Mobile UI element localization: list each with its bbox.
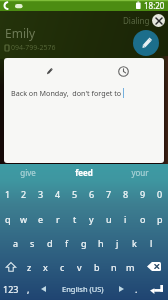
button[interactable]: 1: [0, 181, 16, 206]
staticText: e: [38, 213, 44, 225]
staticText: ,: [27, 283, 30, 295]
staticText: q: [5, 213, 11, 225]
button[interactable]: a: [7, 231, 24, 255]
staticText: 7: [106, 188, 112, 200]
staticText: 6: [89, 188, 95, 200]
button[interactable]: r: [49, 206, 66, 231]
staticText: Dialing: [123, 15, 150, 26]
staticText: k: [132, 237, 137, 249]
button[interactable]: .: [129, 278, 144, 300]
button[interactable]: 7: [100, 181, 117, 206]
button[interactable]: 3: [32, 181, 49, 206]
button[interactable]: q: [0, 206, 16, 231]
button[interactable]: p: [151, 206, 168, 231]
button[interactable]: 0: [151, 181, 168, 206]
staticText: 1: [5, 188, 11, 200]
staticText: 9: [140, 188, 146, 200]
staticText: your: [131, 167, 149, 178]
button[interactable]: m: [122, 255, 139, 278]
button[interactable]: y: [83, 206, 100, 231]
staticText: 3: [38, 188, 44, 200]
button[interactable]: 2: [16, 181, 32, 206]
button[interactable]: 9: [134, 181, 151, 206]
button[interactable]: Next: [114, 278, 129, 300]
staticText: 094-799-2576: [11, 43, 56, 53]
staticText: Emily: [5, 25, 36, 41]
button[interactable]: 123: [0, 278, 21, 300]
button[interactable]: n: [105, 255, 122, 278]
staticText: y: [89, 213, 94, 225]
staticText: x: [43, 261, 48, 273]
staticText: v: [77, 261, 82, 273]
button[interactable]: Enter: [144, 278, 168, 300]
button[interactable]: o: [134, 206, 151, 231]
staticText: g: [81, 237, 87, 249]
button[interactable]: Shift: [0, 255, 21, 278]
staticText: give: [20, 167, 36, 178]
button[interactable]: s: [24, 231, 41, 255]
button[interactable]: t: [66, 206, 83, 231]
button[interactable]: j: [109, 231, 126, 255]
staticText: t: [73, 213, 77, 225]
staticText: .: [135, 283, 138, 295]
staticText: o: [140, 213, 146, 225]
button[interactable]: c: [54, 255, 71, 278]
staticText: m: [126, 261, 135, 273]
staticText: n: [111, 261, 117, 273]
button[interactable]: give: [0, 164, 56, 181]
button[interactable]: z: [21, 255, 37, 278]
button[interactable]: English (US): [51, 278, 114, 300]
button[interactable]: ,: [21, 278, 36, 300]
button[interactable]: l: [143, 231, 160, 255]
staticText: u: [106, 213, 112, 225]
button[interactable]: 6: [83, 181, 100, 206]
button[interactable]: h: [92, 231, 109, 255]
staticText: h: [98, 237, 104, 249]
staticText: j: [116, 237, 119, 249]
button[interactable]: k: [126, 231, 143, 255]
staticText: d: [47, 237, 53, 249]
button[interactable]: 4: [49, 181, 66, 206]
button[interactable]: b: [88, 255, 105, 278]
staticText: l: [150, 237, 153, 249]
button[interactable]: g: [75, 231, 92, 255]
staticText: 5: [72, 188, 78, 200]
staticText: c: [60, 261, 65, 273]
button[interactable]: u: [100, 206, 117, 231]
button[interactable]: Edit message: [133, 30, 159, 56]
staticText: Back on Monday, don't forget to: [11, 88, 122, 98]
button[interactable]: e: [32, 206, 49, 231]
staticText: a: [13, 237, 19, 249]
button[interactable]: v: [71, 255, 88, 278]
staticText: 123: [3, 283, 19, 295]
button[interactable]: 5: [66, 181, 83, 206]
button[interactable]: 8: [117, 181, 134, 206]
staticText: 18:20: [144, 0, 165, 11]
staticText: feed: [75, 167, 93, 178]
button[interactable]: w: [16, 206, 32, 231]
staticText: p: [157, 213, 163, 225]
staticText: s: [30, 237, 35, 249]
button[interactable]: f: [58, 231, 75, 255]
staticText: 4: [55, 188, 61, 200]
button[interactable]: Schedule: [112, 60, 134, 82]
button[interactable]: d: [41, 231, 58, 255]
staticText: 2: [21, 188, 27, 200]
staticText: f: [65, 237, 69, 249]
staticText: i: [124, 213, 127, 225]
button[interactable]: Backspace: [139, 255, 168, 278]
button[interactable]: x: [37, 255, 54, 278]
button[interactable]: i: [117, 206, 134, 231]
button[interactable]: Previous: [36, 278, 51, 300]
staticText: 0: [157, 188, 163, 200]
staticText: b: [94, 261, 100, 273]
button[interactable]: your: [112, 164, 168, 181]
button[interactable]: Edit: [38, 60, 60, 82]
button[interactable]: feed: [56, 164, 112, 181]
staticText: z: [27, 261, 32, 273]
staticText: English (US): [62, 284, 104, 294]
staticText: w: [20, 213, 28, 225]
staticText: r: [56, 213, 60, 225]
staticText: 8: [123, 188, 129, 200]
button[interactable]: End call: [152, 14, 165, 27]
